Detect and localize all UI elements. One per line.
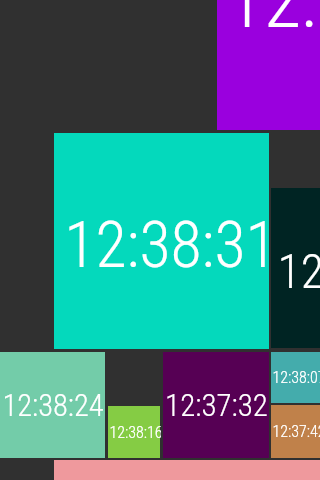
button[interactable]: 12:37:42	[271, 405, 320, 458]
button[interactable]: 12:38:16	[108, 406, 160, 458]
button[interactable]: 12:38:24	[0, 352, 105, 458]
staticText: 12:38:24	[2, 388, 104, 424]
button[interactable]: 12:38:29	[271, 188, 320, 348]
staticText: 12:38:07	[272, 368, 320, 387]
button[interactable]: 12:38:07	[271, 352, 320, 403]
staticText: 12:38:29	[277, 243, 320, 299]
button[interactable]: 12:38:31	[54, 133, 269, 349]
staticText: 12:38:47	[226, 0, 320, 46]
staticText: 12:37:42	[272, 422, 320, 441]
button[interactable]: 12:37:32	[163, 352, 269, 458]
staticText: 12:38:16	[109, 423, 161, 442]
staticText: 12:37:32	[165, 387, 268, 423]
button[interactable]: 12:38:47	[217, 0, 320, 130]
staticText: 12:38:31	[64, 208, 277, 283]
